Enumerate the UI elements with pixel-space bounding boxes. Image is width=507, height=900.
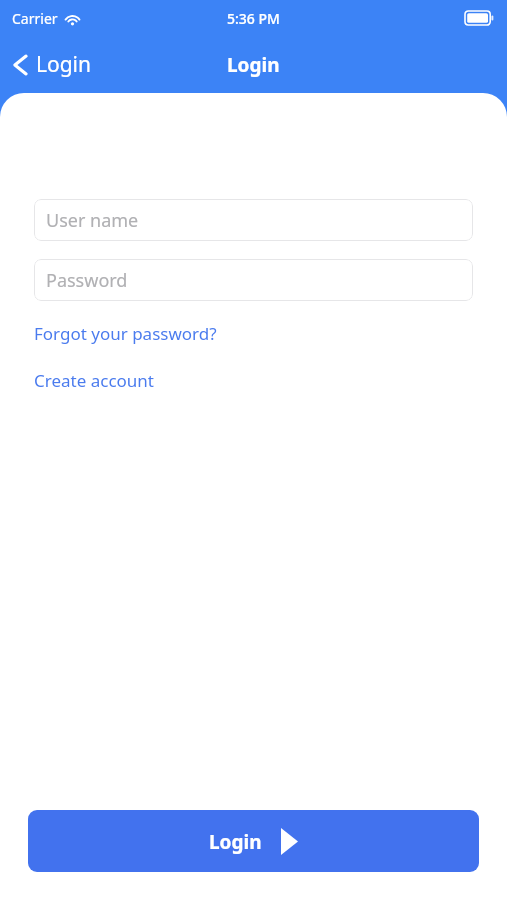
button[interactable]: User name bbox=[34, 199, 473, 241]
other: Back bbox=[12, 53, 28, 77]
staticText: Login bbox=[36, 50, 92, 79]
staticText: Forgot your password? bbox=[34, 322, 217, 345]
button[interactable]: Back bbox=[0, 44, 104, 85]
staticText: Password bbox=[46, 268, 128, 293]
staticText: Create account bbox=[34, 369, 154, 392]
staticText: Login bbox=[209, 829, 262, 855]
staticText: User name bbox=[46, 208, 139, 233]
staticText: Carrier bbox=[12, 9, 58, 28]
button[interactable]: Password bbox=[34, 259, 473, 301]
other: Proceed bbox=[281, 828, 298, 855]
button[interactable]: Login bbox=[28, 810, 479, 872]
staticText: 5:36 PM bbox=[227, 9, 280, 28]
button[interactable]: Forgot your password? bbox=[34, 320, 217, 347]
staticText: Login bbox=[227, 52, 280, 78]
button[interactable]: Create account bbox=[34, 367, 154, 394]
